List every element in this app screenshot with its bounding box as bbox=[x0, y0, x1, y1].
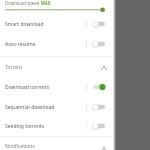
staticText: Auto-resume bbox=[5, 41, 86, 48]
staticText: Seeding torrents bbox=[5, 123, 86, 130]
button[interactable]: Disabled bbox=[93, 18, 105, 30]
button[interactable]: Disabled bbox=[93, 101, 105, 113]
button[interactable]: Sequential download bbox=[0, 98, 113, 116]
button[interactable]: Notifications bbox=[0, 137, 113, 150]
button[interactable]: Torrent bbox=[0, 58, 113, 76]
button[interactable]: Seeding torrents bbox=[0, 117, 113, 135]
staticText: Download speed MAX bbox=[5, 0, 51, 6]
button[interactable]: Smart download bbox=[0, 15, 113, 33]
staticText: Download torrents bbox=[5, 84, 86, 91]
button[interactable]: Enabled bbox=[93, 81, 105, 93]
button[interactable]: Disabled bbox=[93, 38, 105, 50]
staticText: Notifications bbox=[5, 143, 99, 150]
other: Collapse Torrent section bbox=[99, 62, 109, 72]
button[interactable]: Disabled bbox=[93, 120, 105, 132]
button[interactable]: Download speed slider bbox=[0, 4, 113, 16]
staticText: Sequential download bbox=[5, 104, 86, 111]
button[interactable]: Download torrents bbox=[0, 78, 113, 96]
staticText: Smart download bbox=[5, 21, 86, 28]
other: Collapse Notifications section bbox=[99, 141, 109, 150]
staticText: Torrent bbox=[5, 64, 99, 71]
button[interactable]: Auto-resume bbox=[0, 35, 113, 53]
